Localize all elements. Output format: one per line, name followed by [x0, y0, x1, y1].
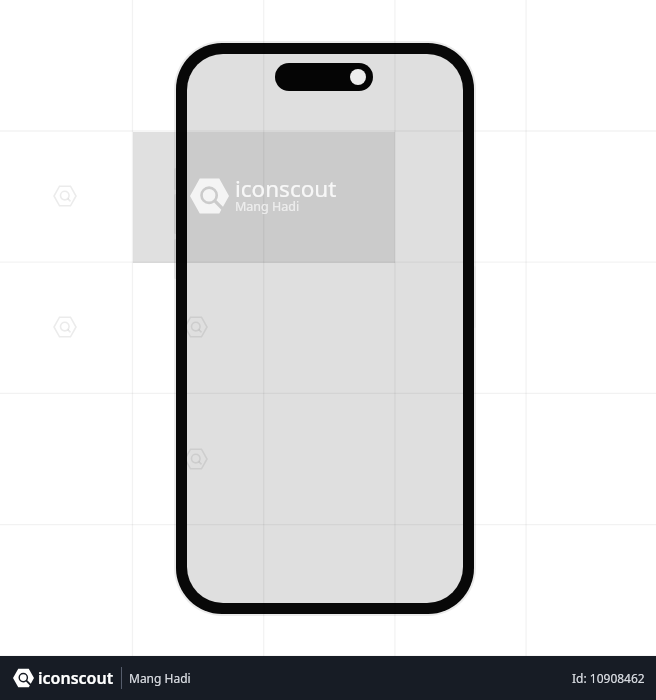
- staticText: Mang Hadi: [235, 198, 300, 215]
- staticText: Mang Hadi: [129, 670, 191, 686]
- staticText: Id: 10908462: [572, 670, 645, 686]
- button[interactable]: iconscout: [13, 667, 191, 689]
- staticText: iconscout: [38, 667, 114, 689]
- staticText: iconscout: [235, 173, 337, 204]
